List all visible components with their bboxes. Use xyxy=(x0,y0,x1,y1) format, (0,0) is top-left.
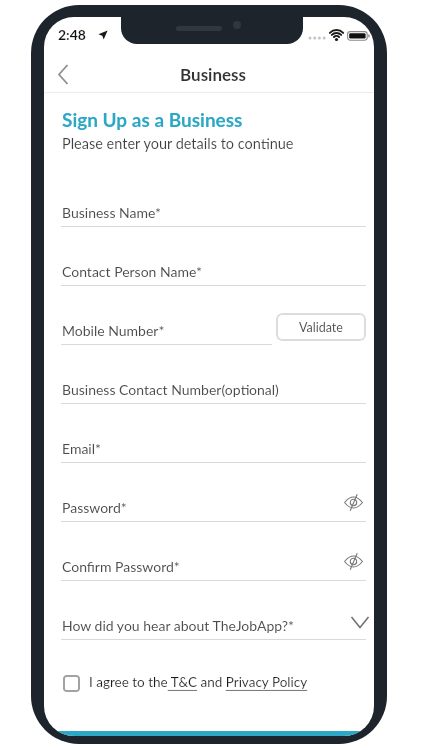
staticText: Mobile Number* xyxy=(62,322,165,339)
staticText: Contact Person Name* xyxy=(62,263,202,280)
button[interactable]: How did you hear about TheJobApp?* xyxy=(54,609,374,647)
button[interactable]: Confirm Password* xyxy=(54,550,374,588)
button[interactable] xyxy=(48,57,78,87)
staticText: Sign Up as a Business xyxy=(62,108,243,131)
button[interactable]: Business Name* xyxy=(54,196,374,234)
staticText: 2:48 xyxy=(58,26,86,43)
button[interactable] xyxy=(340,549,368,575)
button[interactable]: Validate xyxy=(276,313,366,341)
staticText: Business Contact Number(optional) xyxy=(62,381,279,398)
button[interactable]: Email* xyxy=(54,432,374,470)
staticText: Business Name* xyxy=(62,204,162,221)
button[interactable]: Password* xyxy=(54,491,374,529)
button[interactable]: Business Contact Number(optional) xyxy=(54,373,374,411)
staticText: Validate xyxy=(299,320,343,335)
button[interactable] xyxy=(44,731,374,736)
staticText: Email* xyxy=(62,440,101,457)
staticText: Please enter your details to continue xyxy=(62,135,294,152)
button[interactable]: Mobile Number* xyxy=(54,314,374,352)
staticText: How did you hear about TheJobApp?* xyxy=(62,617,294,634)
staticText: Confirm Password* xyxy=(62,558,180,575)
button[interactable]: Contact Person Name* xyxy=(54,255,374,293)
button[interactable] xyxy=(63,675,80,692)
staticText: Business xyxy=(180,64,247,84)
staticText: Password* xyxy=(62,499,127,516)
button[interactable] xyxy=(340,490,368,516)
button[interactable]: I agree to the T&C and Privacy Policy xyxy=(89,674,308,690)
